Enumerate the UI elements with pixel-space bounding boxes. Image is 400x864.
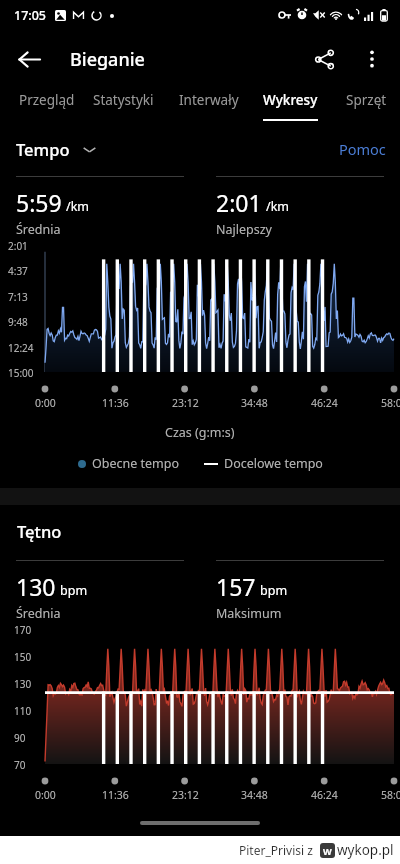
staticText: 12:24 [8,341,34,355]
staticText: 2:01 [8,239,28,253]
staticText: bpm [260,582,288,599]
staticText: 2:01 [216,187,262,218]
staticText: Tętno [17,520,62,542]
button[interactable]: More options [350,37,394,81]
staticText: 46:24 [311,788,338,802]
staticText: wykop.pl [337,841,394,859]
staticText: Statystyki [93,91,154,109]
staticText: 17:05 [14,7,47,24]
button[interactable]: Statystyki [81,88,165,128]
button[interactable]: Przegląd [5,88,89,128]
staticText: 130 [14,677,32,691]
staticText: Najlepszy [216,221,272,238]
staticText: 157 [216,571,256,602]
staticText: bpm [60,582,88,599]
staticText: 90 [14,731,26,745]
staticText: Obecne tempo [92,455,180,472]
staticText: 130 [16,571,56,602]
staticText: 5:59 [16,187,62,218]
staticText: 7:13 [8,290,28,304]
staticText: 46:24 [311,396,338,410]
staticText: /km [66,198,90,215]
button[interactable]: Sprzęt [324,88,400,128]
staticText: Piter_Privisi z [239,842,313,858]
button[interactable]: Back [6,36,52,82]
staticText: 0:00 [35,788,56,802]
staticText: Pomoc [339,139,386,159]
staticText: 9:48 [8,315,28,329]
staticText: 34:48 [241,788,268,802]
button[interactable]: Interwały [167,88,251,128]
staticText: Bieganie [70,47,145,72]
staticText: Średnia [16,605,61,622]
staticText: 110 [14,704,32,718]
staticText: 11:36 [102,788,129,802]
staticText: Maksimum [216,605,282,622]
button[interactable]: Wykresy [248,88,332,128]
staticText: /km [266,198,290,215]
staticText: 58:00 [381,788,400,802]
staticText: W [323,845,332,857]
staticText: 70 [14,758,26,772]
staticText: 34:48 [241,396,268,410]
staticText: 170 [14,623,32,637]
staticText: 23:12 [172,788,199,802]
staticText: Czas (g:m:s) [165,424,235,441]
staticText: Interwały [179,91,239,109]
staticText: 150 [14,650,32,664]
staticText: 4:37 [8,264,28,278]
staticText: 0:00 [35,396,56,410]
staticText: 58:00 [381,396,400,410]
staticText: Docelowe tempo [224,455,323,472]
button[interactable]: Pomoc [329,133,396,165]
staticText: Sprzęt [346,91,387,109]
staticText: Wykresy [263,91,318,109]
button[interactable]: Tempo [10,133,102,165]
staticText: Tempo [16,138,70,160]
staticText: 23:12 [172,396,199,410]
staticText: 11:36 [102,396,129,410]
staticText: 15:00 [8,366,34,380]
staticText: Przegląd [19,91,75,109]
button[interactable]: Share [302,37,346,81]
staticText: Średnia [16,221,61,238]
